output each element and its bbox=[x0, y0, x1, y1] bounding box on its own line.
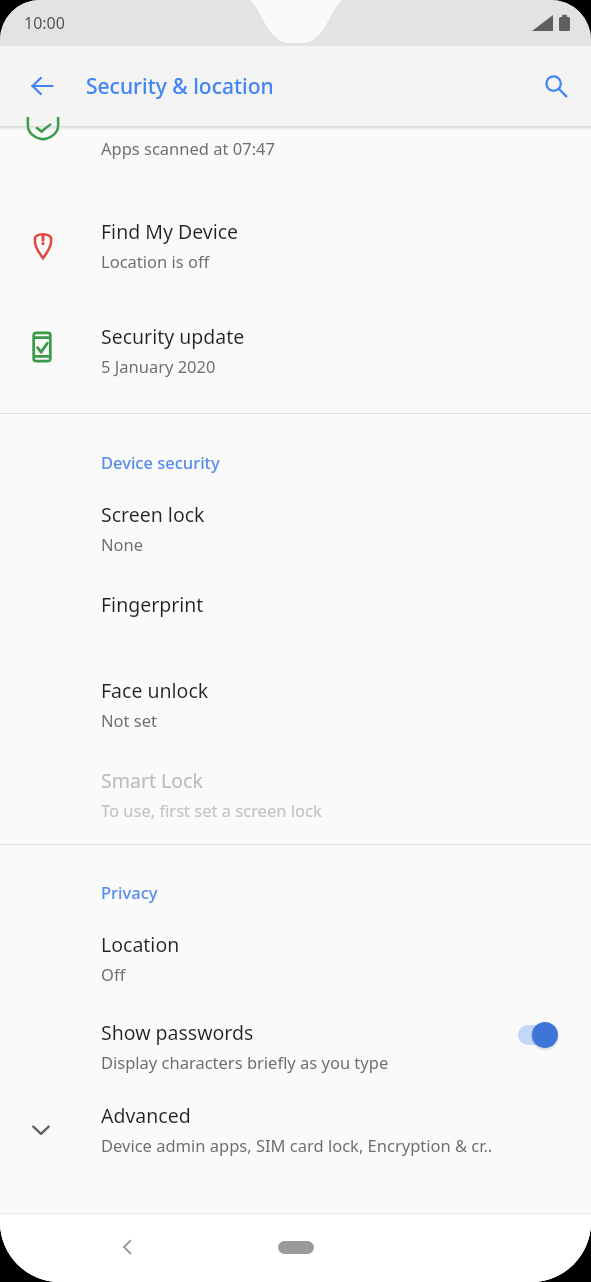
button[interactable]: Home bbox=[264, 1227, 328, 1267]
button[interactable]: Back bbox=[104, 1223, 152, 1271]
staticText: 10:00 bbox=[24, 12, 65, 34]
staticText: Privacy bbox=[101, 881, 158, 903]
button[interactable]: Screen lock bbox=[0, 473, 591, 563]
button[interactable]: Smart Lock bbox=[0, 739, 591, 829]
staticText: Apps scanned at 07:47 bbox=[101, 137, 275, 159]
button[interactable]: Location bbox=[0, 903, 591, 993]
staticText: To use, first set a screen lock bbox=[101, 799, 322, 821]
button[interactable]: Face unlock bbox=[0, 649, 591, 739]
staticText: Display characters briefly as you type bbox=[101, 1051, 389, 1073]
button[interactable]: Search bbox=[528, 58, 584, 114]
button[interactable]: Back bbox=[14, 58, 70, 114]
button[interactable]: Fingerprint bbox=[0, 563, 591, 649]
staticText: Device admin apps, SIM card lock, Encryp… bbox=[101, 1134, 493, 1156]
staticText: Location is off bbox=[101, 250, 210, 272]
staticText: Show passwords bbox=[101, 1019, 254, 1046]
button[interactable]: Show passwords bbox=[0, 993, 591, 1088]
button[interactable]: Advanced bbox=[0, 1088, 591, 1158]
button[interactable]: Find My Device bbox=[0, 190, 591, 295]
staticText: Location bbox=[101, 931, 180, 958]
staticText: Smart Lock bbox=[101, 767, 203, 794]
button[interactable] bbox=[0, 130, 591, 190]
staticText: Face unlock bbox=[101, 677, 209, 704]
button[interactable]: Security update bbox=[0, 295, 591, 400]
staticText: Security update bbox=[101, 323, 245, 350]
staticText: Advanced bbox=[101, 1102, 191, 1129]
staticText: None bbox=[101, 533, 144, 555]
staticText: Device security bbox=[101, 451, 220, 473]
staticText: Find My Device bbox=[101, 218, 239, 245]
staticText: 5 January 2020 bbox=[101, 355, 216, 377]
staticText: Security & location bbox=[86, 72, 274, 101]
staticText: Screen lock bbox=[101, 501, 205, 528]
staticText: Off bbox=[101, 963, 126, 985]
staticText: Fingerprint bbox=[101, 591, 204, 618]
staticText: Not set bbox=[101, 709, 157, 731]
